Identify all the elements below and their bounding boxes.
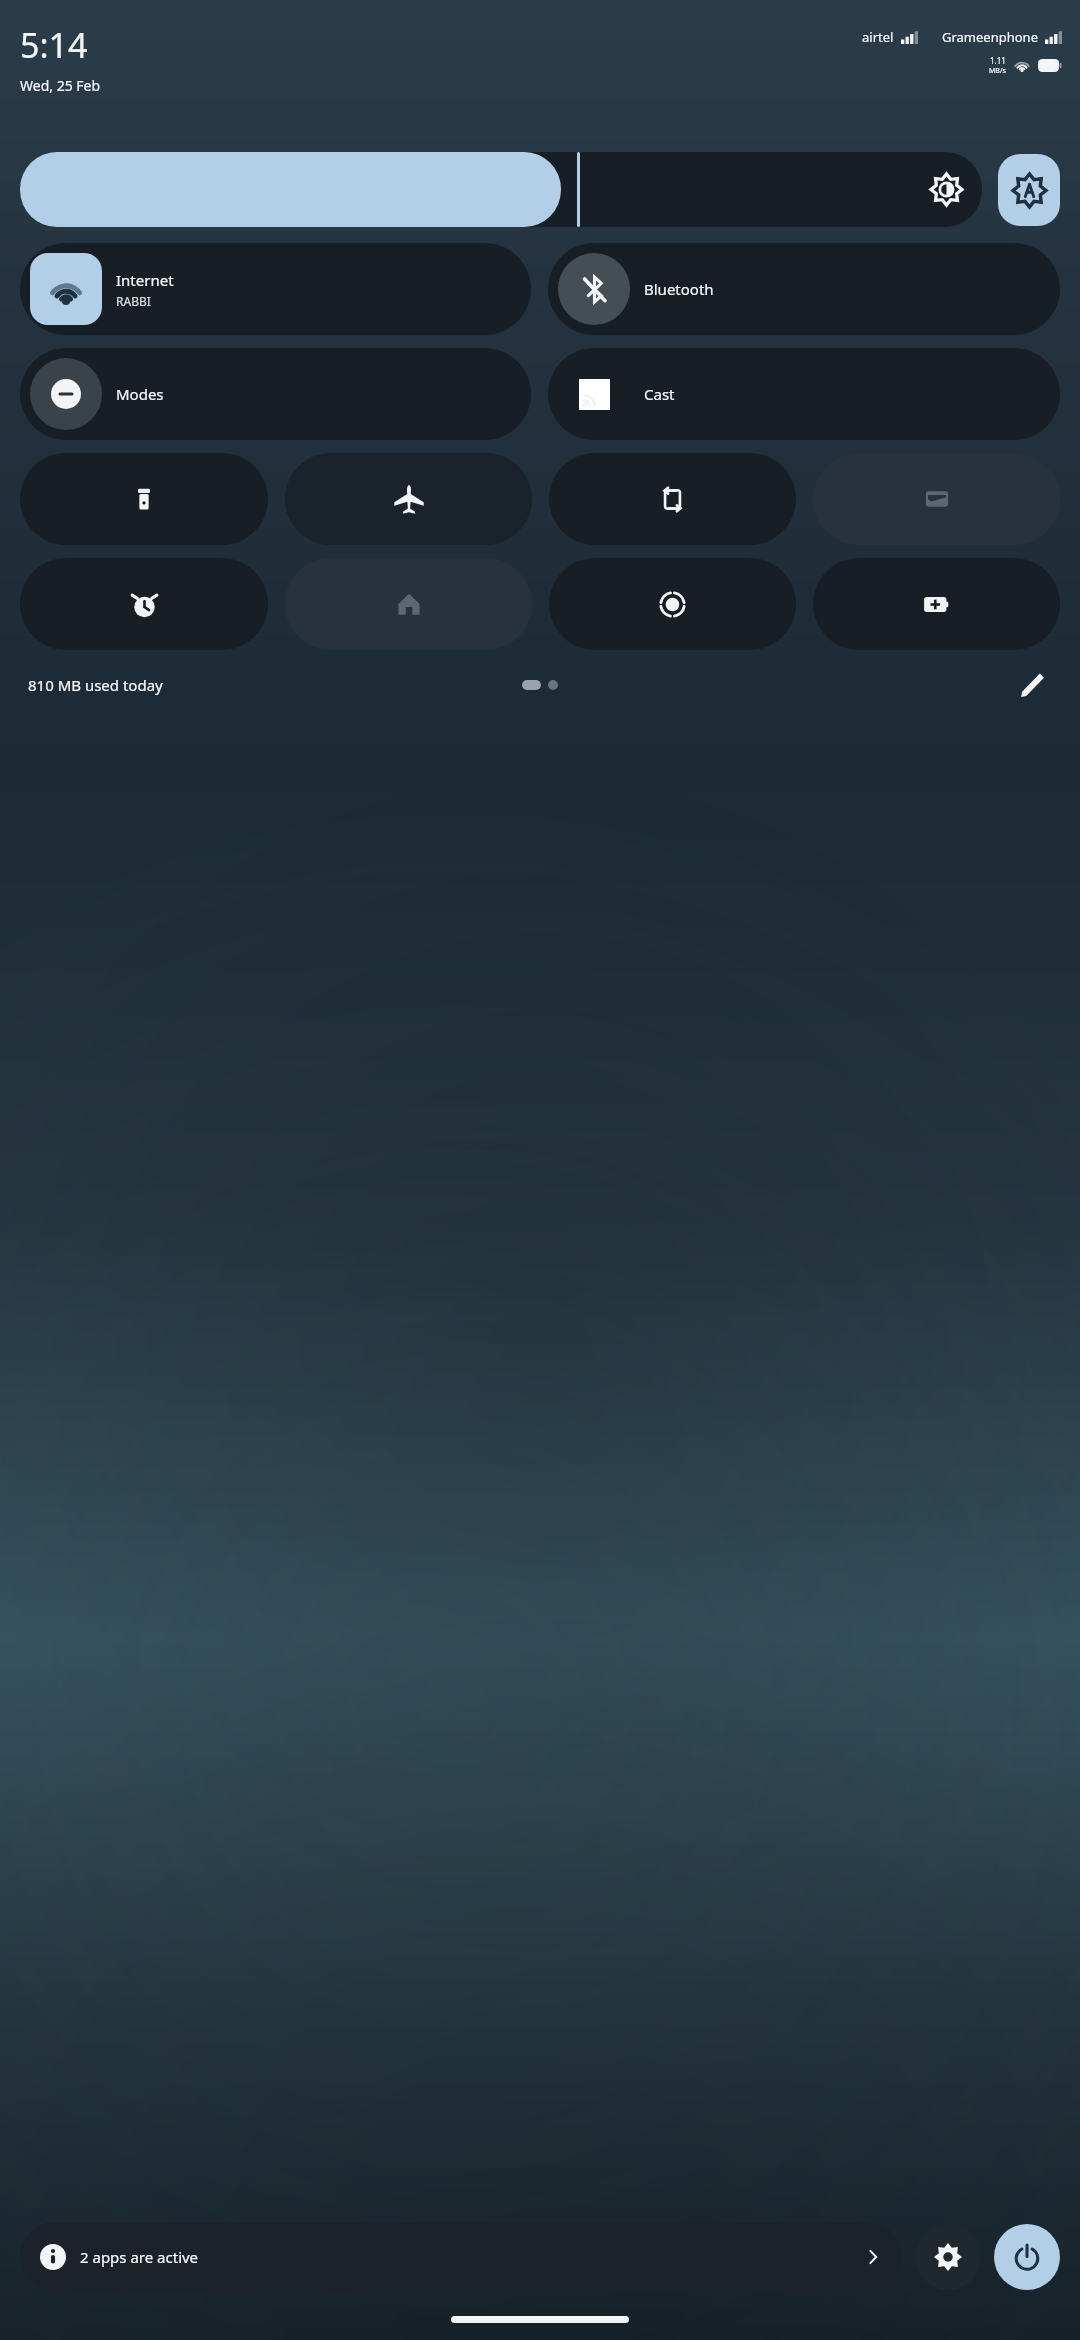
button[interactable]: Cast [548,348,1060,440]
button[interactable]: Brightness [20,152,982,227]
button[interactable]: Flashlight [20,453,268,545]
staticText: Modes [116,384,164,404]
staticText: Bluetooth [644,279,714,299]
staticText: airtel [862,28,894,46]
staticText: 810 MB used today [28,675,163,695]
button[interactable]: Bluetooth [548,243,1060,335]
button[interactable]: Screen record [549,558,796,650]
button[interactable]: 2 apps are active [20,2222,902,2292]
button[interactable]: Power [994,2224,1060,2290]
button[interactable]: Modes [20,348,531,440]
staticText: Internet [116,270,174,290]
staticText: 1.11 [990,55,1006,66]
staticText: Grameenphone [942,28,1038,46]
staticText: MB/s [989,66,1006,76]
button[interactable]: Settings [915,2224,981,2290]
button[interactable]: Internet [20,243,531,335]
staticText: Wed, 25 Feb [20,76,101,95]
staticText: Cast [644,384,675,404]
staticText: 5:14 [20,22,88,68]
button[interactable]: Home [285,558,532,650]
button[interactable]: Auto brightness [998,154,1060,226]
button[interactable]: Edit tiles [1012,665,1052,705]
staticText: RABBI [116,293,151,309]
button[interactable]: Airplane mode [285,453,532,545]
button[interactable]: Battery saver [813,558,1060,650]
staticText: 2 apps are active [80,2247,199,2267]
button[interactable]: Alarm [20,558,268,650]
button[interactable]: Wallet [813,453,1060,545]
button[interactable]: Auto rotate [549,453,796,545]
